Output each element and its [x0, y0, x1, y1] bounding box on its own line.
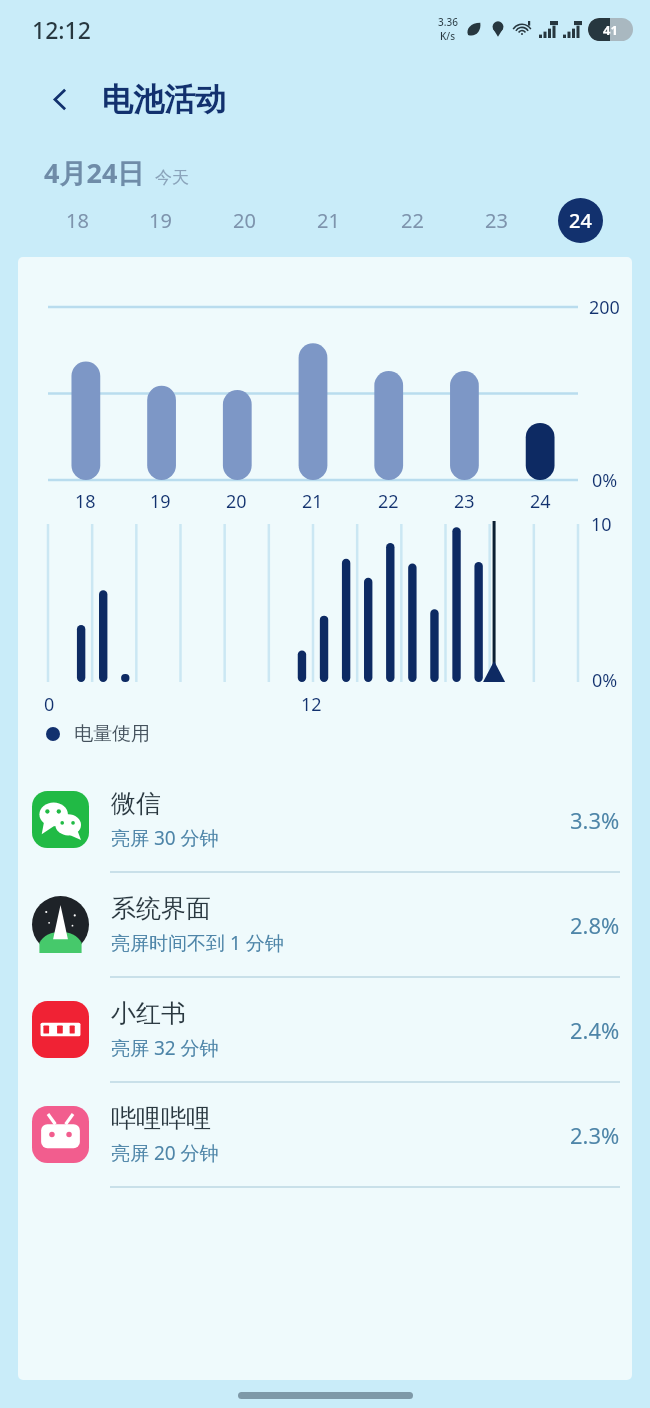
staticText: 微信	[111, 788, 161, 819]
staticText: 200	[589, 295, 620, 320]
staticText: 19	[150, 489, 171, 510]
button[interactable]: 20	[202, 191, 286, 249]
staticText: 23	[454, 489, 475, 510]
button[interactable]: 微信	[18, 768, 632, 873]
button[interactable]: 18	[36, 191, 119, 249]
staticText: K/s	[440, 29, 456, 43]
staticText: 今天	[155, 167, 189, 188]
staticText: 12	[301, 692, 322, 717]
staticText: 41	[603, 21, 618, 39]
staticText: 10	[591, 512, 612, 537]
staticText: 19	[149, 207, 172, 234]
staticText: 12:12	[32, 14, 91, 45]
staticText: 4月24日	[44, 154, 145, 191]
button[interactable]: 22	[370, 191, 454, 249]
staticText: 0	[44, 692, 55, 717]
button[interactable]: Back	[38, 77, 82, 121]
staticText: 18	[75, 489, 96, 510]
staticText: 3.3%	[570, 805, 620, 835]
staticText: 亮屏 32 分钟	[111, 1035, 219, 1061]
staticText: 2.3%	[570, 1120, 620, 1150]
staticText: 小红书	[111, 998, 186, 1029]
staticText: 电池活动	[102, 80, 226, 119]
button[interactable]: 系统界面	[18, 873, 632, 978]
staticText: 系统界面	[111, 893, 211, 924]
staticText: 电量使用	[74, 722, 150, 746]
button[interactable]: 23	[454, 191, 538, 249]
staticText: 2.4%	[570, 1015, 620, 1045]
button[interactable]: 19	[119, 191, 202, 249]
staticText: 22	[401, 207, 424, 234]
button[interactable]: 哔哩哔哩	[18, 1083, 632, 1188]
staticText: 2.8%	[570, 910, 620, 940]
staticText: 亮屏 30 分钟	[111, 825, 219, 851]
staticText: 0%	[592, 668, 618, 693]
staticText: 亮屏时间不到 1 分钟	[111, 930, 284, 956]
staticText: 哔哩哔哩	[111, 1103, 211, 1134]
staticText: 20	[233, 207, 256, 234]
staticText: 22	[378, 489, 399, 510]
staticText: 21	[317, 207, 340, 234]
staticText: 23	[485, 207, 508, 234]
button[interactable]: 小红书	[18, 978, 632, 1083]
staticText: 亮屏 20 分钟	[111, 1140, 219, 1166]
button[interactable]: 24	[538, 191, 622, 249]
staticText: 0%	[592, 468, 618, 493]
staticText: 3.36	[438, 15, 458, 29]
staticText: 21	[302, 489, 323, 510]
staticText: 24	[530, 489, 551, 510]
staticText: 18	[66, 207, 89, 234]
staticText: 20	[226, 489, 247, 510]
staticText: 24	[569, 207, 592, 234]
button[interactable]: 21	[286, 191, 370, 249]
